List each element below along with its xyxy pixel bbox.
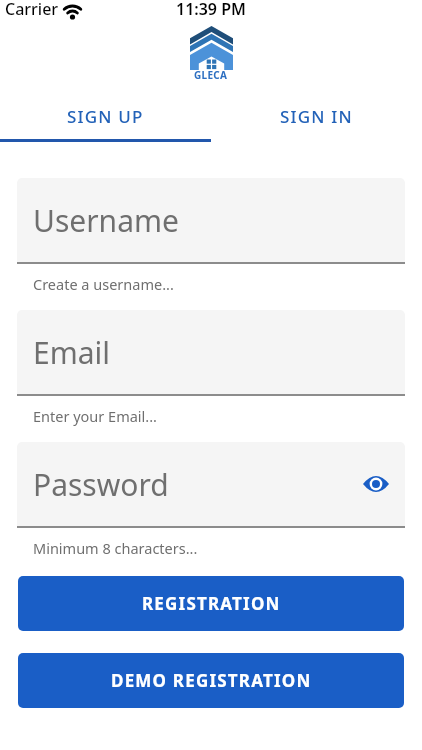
- staticText: Carrier: [5, 0, 59, 20]
- staticText: SIGN IN: [280, 105, 353, 128]
- staticText: Email: [33, 332, 111, 373]
- button[interactable]: Email: [17, 310, 405, 394]
- button[interactable]: Password: [17, 442, 405, 526]
- button[interactable]: Username: [17, 178, 405, 262]
- staticText: SIGN UP: [67, 105, 144, 128]
- staticText: REGISTRATION: [142, 592, 281, 615]
- staticText: DEMO REGISTRATION: [111, 669, 312, 692]
- staticText: Username: [33, 200, 179, 241]
- button[interactable]: SIGN UP: [0, 92, 211, 140]
- staticText: Enter your Email...: [33, 406, 157, 426]
- staticText: 11:39 PM: [176, 0, 246, 20]
- staticText: Create a username...: [33, 274, 174, 294]
- staticText: GLECA: [194, 68, 228, 82]
- staticText: Password: [33, 464, 169, 505]
- staticText: Minimum 8 characters...: [33, 538, 198, 558]
- button[interactable]: REGISTRATION: [18, 576, 404, 631]
- button[interactable]: SIGN IN: [211, 92, 422, 140]
- button[interactable]: DEMO REGISTRATION: [18, 653, 404, 708]
